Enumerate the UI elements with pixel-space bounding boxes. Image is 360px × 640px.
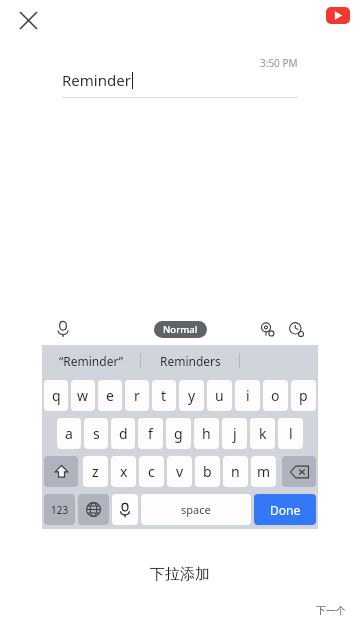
button[interactable]: Shift [44, 456, 78, 487]
button[interactable]: m [251, 456, 276, 487]
staticText: x [120, 462, 128, 481]
button[interactable]: z [83, 456, 108, 487]
staticText: b [203, 462, 212, 481]
button[interactable]: x [111, 456, 136, 487]
button[interactable]: Time [286, 319, 306, 339]
staticText: g [174, 424, 183, 443]
button[interactable]: 下一个 [316, 604, 346, 617]
staticText: 下拉添加 [150, 565, 210, 584]
button[interactable]: Close [12, 4, 44, 36]
staticText: Done [270, 502, 301, 518]
button[interactable]: Change language [78, 494, 109, 525]
button[interactable]: f [138, 418, 163, 449]
button[interactable]: k [250, 418, 275, 449]
staticText: m [257, 462, 271, 481]
staticText: s [93, 424, 100, 443]
button[interactable]: YouTube [326, 7, 350, 24]
staticText: k [259, 424, 267, 443]
staticText: o [271, 386, 280, 405]
staticText: f [148, 424, 153, 443]
button[interactable]: “Reminder” [42, 345, 140, 376]
staticText: h [202, 424, 211, 443]
staticText: w [77, 386, 89, 405]
button[interactable]: r [125, 380, 149, 411]
button[interactable]: v [167, 456, 192, 487]
staticText: space [181, 502, 211, 517]
staticText: 123 [51, 503, 69, 517]
button[interactable]: w [71, 380, 95, 411]
button[interactable]: u [207, 380, 232, 411]
button[interactable]: t [152, 380, 176, 411]
staticText: Reminders [160, 353, 221, 369]
staticText: e [106, 386, 114, 405]
button[interactable]: g [166, 418, 191, 449]
staticText: v [176, 462, 184, 481]
button[interactable]: Location [257, 319, 277, 339]
button[interactable]: Backspace [282, 456, 316, 487]
staticText: z [92, 462, 99, 481]
staticText: 3:50 PM [260, 56, 298, 70]
button[interactable]: p [291, 380, 316, 411]
button[interactable]: o [263, 380, 288, 411]
staticText: i [246, 386, 250, 405]
staticText: n [231, 462, 240, 481]
staticText: t [161, 386, 167, 405]
button[interactable]: j [222, 418, 247, 449]
button[interactable]: Voice typing [112, 494, 138, 525]
staticText: Reminder [62, 70, 131, 90]
button[interactable]: c [139, 456, 164, 487]
staticText: Normal [163, 323, 198, 336]
button[interactable]: Done [254, 494, 316, 525]
staticText: y [188, 386, 196, 405]
button[interactable]: s [84, 418, 108, 449]
staticText: u [215, 386, 224, 405]
button[interactable]: 123 [44, 494, 75, 525]
button[interactable]: y [179, 380, 204, 411]
staticText: j [233, 424, 237, 443]
button[interactable]: h [194, 418, 219, 449]
button[interactable]: e [98, 380, 122, 411]
staticText: l [289, 424, 293, 443]
staticText: d [119, 424, 128, 443]
staticText: a [65, 424, 73, 443]
button[interactable]: i [235, 380, 260, 411]
button[interactable]: Normal [154, 321, 207, 338]
staticText: “Reminder” [59, 353, 124, 369]
staticText: c [148, 462, 155, 481]
staticText: p [299, 386, 308, 405]
staticText: r [134, 386, 140, 405]
button[interactable]: a [57, 418, 81, 449]
button[interactable]: d [111, 418, 135, 449]
button[interactable]: l [278, 418, 303, 449]
button[interactable]: Voice input [52, 318, 74, 340]
button[interactable]: space [141, 494, 251, 525]
button[interactable]: b [195, 456, 220, 487]
button[interactable]: Reminders [141, 345, 239, 376]
button[interactable]: q [44, 380, 68, 411]
button[interactable]: n [223, 456, 248, 487]
staticText: q [52, 386, 61, 405]
